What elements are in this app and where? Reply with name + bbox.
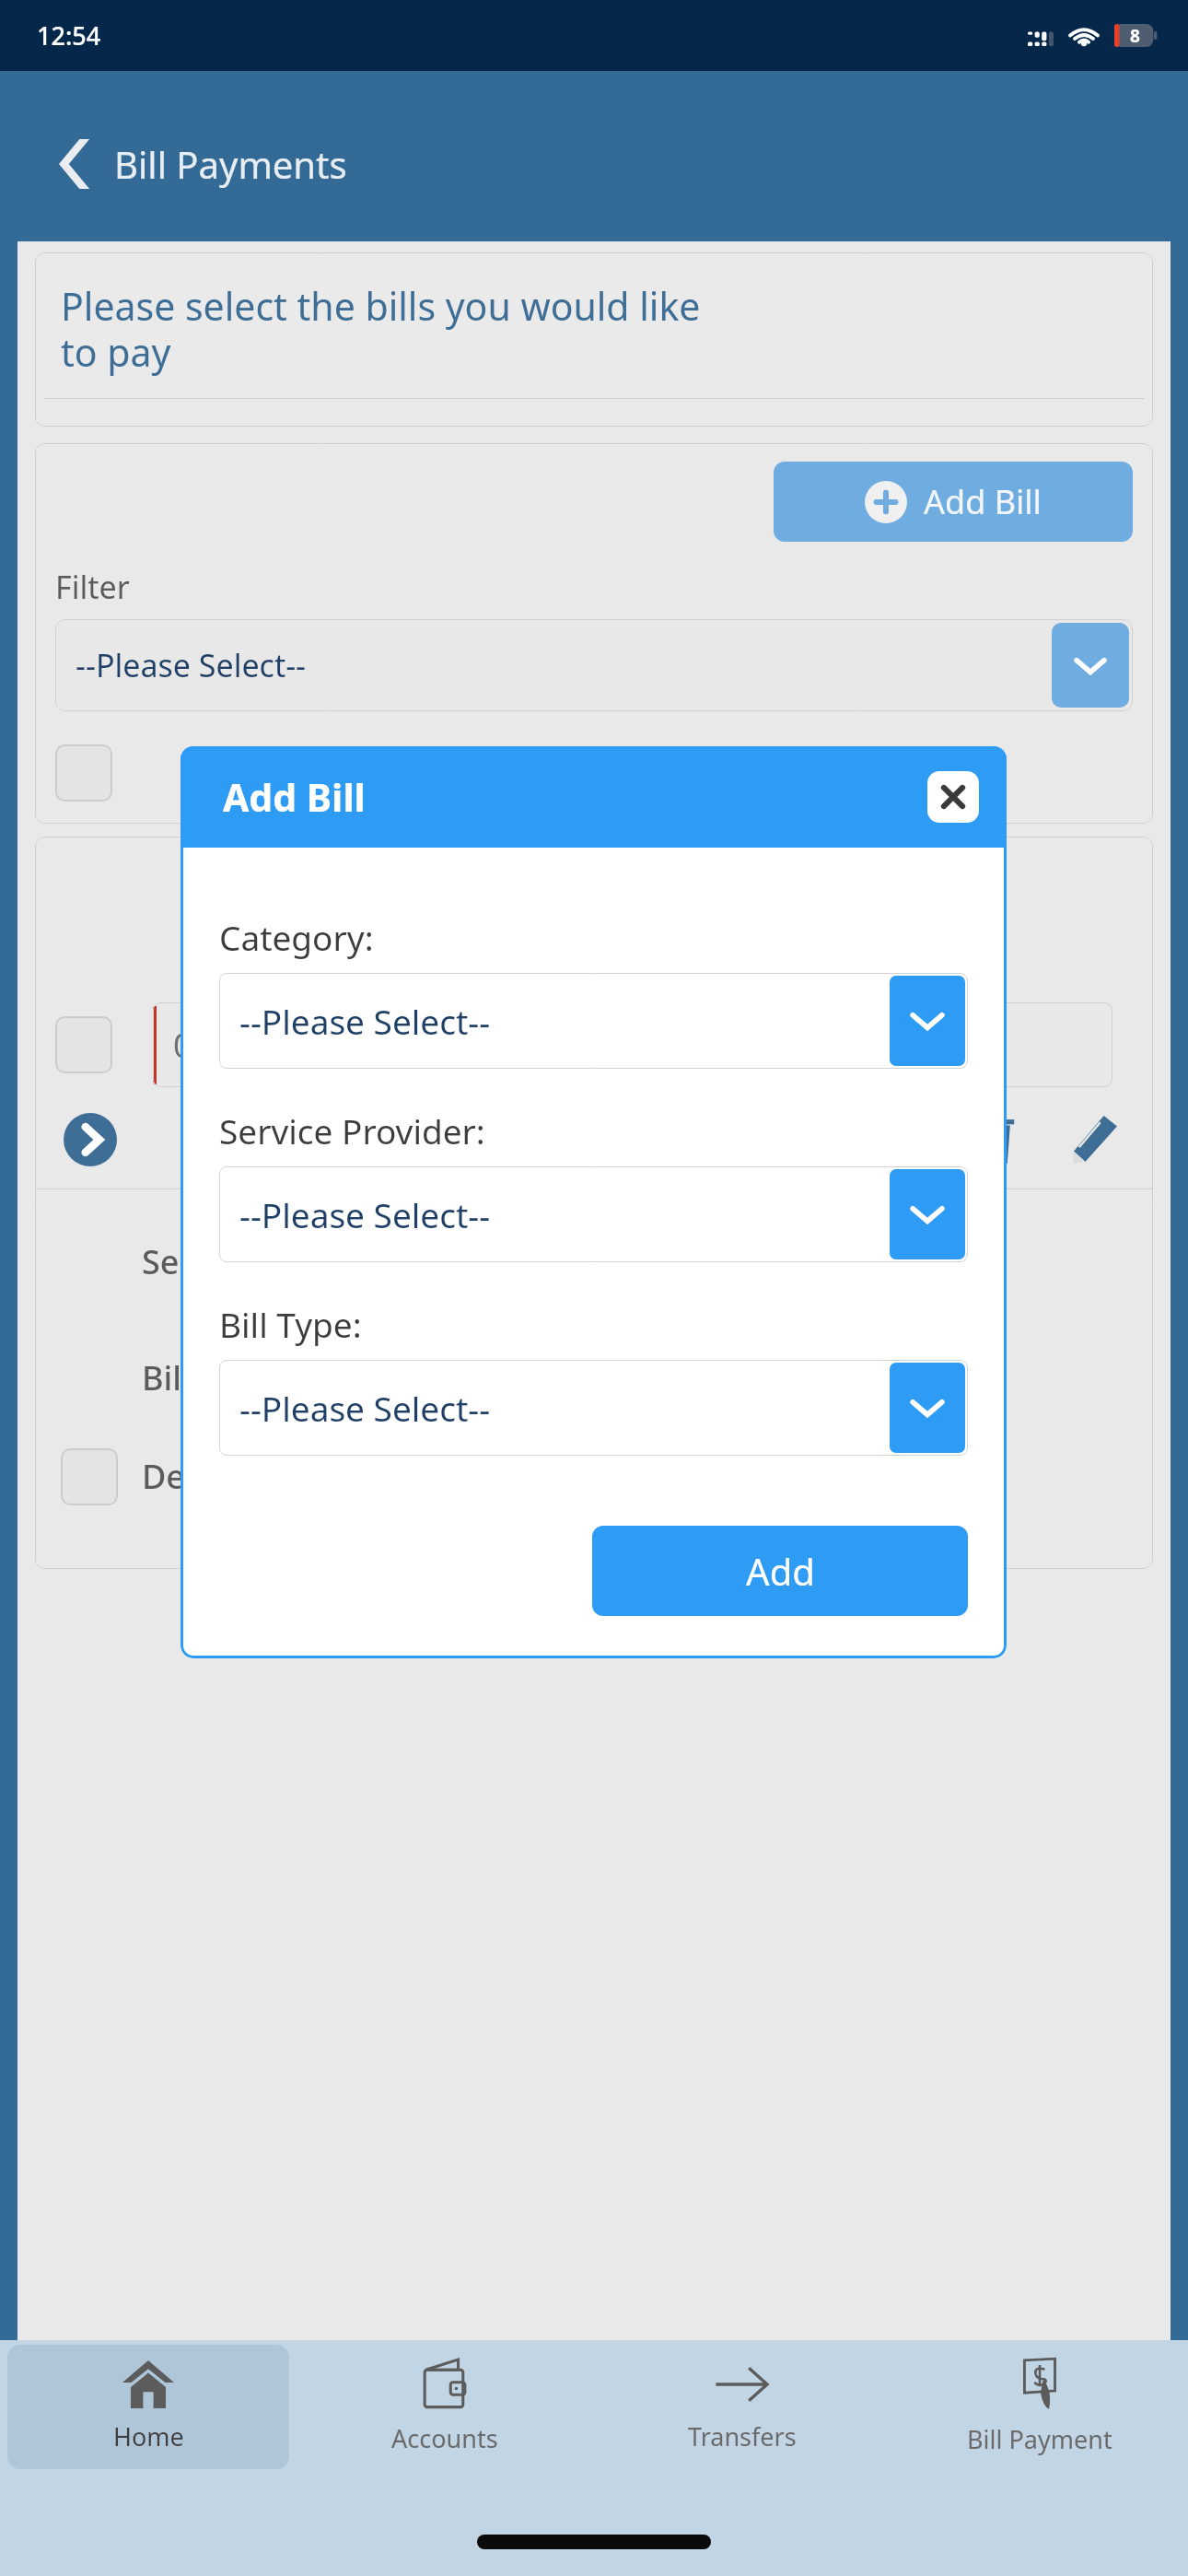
button[interactable]: Home	[7, 2345, 289, 2469]
staticText: Home	[113, 2419, 184, 2453]
button[interactable]: Select bill	[61, 1448, 118, 1505]
staticText: Bill Type	[142, 1355, 355, 1400]
staticText: Service Provider:	[219, 1107, 485, 1153]
staticText: Category:	[219, 914, 374, 960]
staticText: Filter	[55, 566, 130, 608]
button[interactable]: --Please Select--	[219, 1166, 968, 1262]
staticText: --Please Select--	[239, 1191, 887, 1237]
staticText: Account Number: Q57276	[355, 1454, 629, 1547]
staticText: Details	[142, 1454, 355, 1499]
staticText: 8	[1130, 24, 1140, 47]
button[interactable]: Select bill	[55, 1016, 112, 1073]
staticText: Add	[746, 1546, 815, 1596]
button[interactable]: Transfers	[600, 2345, 883, 2469]
button[interactable]: Add	[592, 1526, 968, 1616]
staticText: --Please Select--	[239, 998, 887, 1044]
button[interactable]: Edit bill	[1063, 1107, 1127, 1172]
button[interactable]: --Please Select--	[55, 619, 1133, 711]
button[interactable]: Accounts	[304, 2345, 586, 2469]
staticText: Accounts	[391, 2421, 498, 2455]
button[interactable]: Close	[927, 771, 979, 823]
button[interactable]: Add Bill	[774, 462, 1133, 542]
staticText: Bill Payment	[967, 2422, 1112, 2456]
staticText: Please select the bills you would like t…	[61, 280, 701, 378]
staticText: Transfers	[688, 2419, 797, 2453]
staticText: Add Bill	[223, 771, 366, 823]
staticText: Electricity	[355, 1355, 505, 1400]
staticText: Service Provider	[142, 1239, 397, 1284]
staticText: --Please Select--	[239, 1385, 887, 1431]
button[interactable]: --Please Select--	[219, 1360, 968, 1456]
button[interactable]: Expand bill	[61, 1110, 120, 1169]
staticText: 0.000	[173, 1023, 259, 1068]
staticText: 12:54	[37, 18, 101, 53]
button[interactable]: Bill Payment	[898, 2345, 1181, 2469]
staticText: Add Bill	[924, 479, 1042, 524]
staticText: Bill Type:	[219, 1301, 362, 1347]
button[interactable]: Select bill	[55, 744, 112, 802]
staticText: --Please Select--	[76, 644, 1048, 686]
button[interactable]: --Please Select--	[219, 973, 968, 1069]
button[interactable]: Back	[50, 135, 101, 193]
button[interactable]: Delete bill	[963, 1107, 1028, 1172]
staticText: Bill Payments	[114, 139, 347, 189]
